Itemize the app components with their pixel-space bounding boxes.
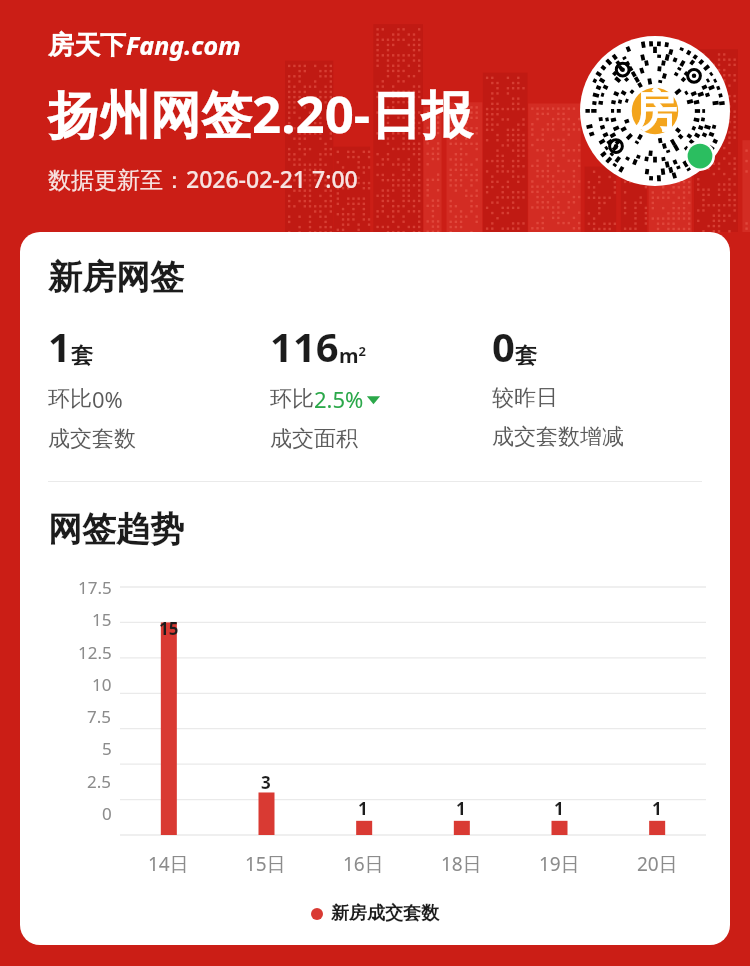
button[interactable]: 1 — [48, 319, 270, 453]
staticText: 0 — [102, 802, 112, 824]
staticText: 2.5 — [87, 770, 112, 792]
staticText: 15日 — [245, 851, 286, 877]
staticText: 1 — [358, 797, 368, 820]
staticText: 成交套数 — [48, 425, 136, 453]
staticText: 套 — [515, 342, 537, 370]
staticText: 18日 — [441, 851, 482, 877]
staticText: 14日 — [148, 851, 189, 877]
staticText: 15 — [92, 608, 112, 630]
staticText: 套 — [71, 342, 93, 370]
staticText: 1 — [48, 319, 71, 373]
staticText: 16日 — [343, 851, 384, 877]
staticText: 1 — [652, 797, 662, 820]
staticText: 房天下 — [48, 29, 126, 62]
staticText: 10 — [92, 673, 112, 695]
staticText: 0% — [92, 384, 123, 414]
staticText: 17.5 — [78, 576, 112, 598]
staticText: 2.5% — [314, 384, 364, 414]
staticText: Fang.com — [126, 28, 241, 62]
staticText: 新房网签 — [48, 256, 184, 299]
button[interactable]: 扫描二维码打开小程序 — [580, 36, 730, 186]
staticText: m2 — [339, 342, 366, 369]
staticText: 成交套数增减 — [492, 423, 624, 451]
staticText: 15 — [159, 617, 179, 640]
staticText: 1 — [456, 797, 466, 820]
staticText: 20日 — [637, 851, 678, 877]
staticText: 3 — [261, 771, 271, 794]
staticText: 0 — [492, 319, 515, 373]
staticText: 扬州网签2.20-日报 — [48, 78, 473, 148]
staticText: 环比 — [48, 385, 92, 413]
staticText: 1 — [554, 797, 564, 820]
staticText: 新房成交套数 — [331, 902, 439, 925]
staticText: 12.5 — [78, 641, 112, 663]
staticText: 数据更新至：2026-02-21 7:00 — [48, 163, 358, 194]
button[interactable]: 0 — [492, 319, 714, 451]
button[interactable]: 116 — [270, 319, 492, 453]
staticText: 116 — [270, 319, 339, 373]
staticText: 7.5 — [87, 705, 112, 727]
staticText: 5 — [102, 737, 112, 759]
staticText: 环比 — [270, 385, 314, 413]
staticText: 成交面积 — [270, 425, 358, 453]
staticText: 19日 — [539, 851, 580, 877]
staticText: 较昨日 — [492, 384, 558, 412]
staticText: 房 — [633, 84, 677, 139]
staticText: 网签趋势 — [48, 508, 184, 551]
